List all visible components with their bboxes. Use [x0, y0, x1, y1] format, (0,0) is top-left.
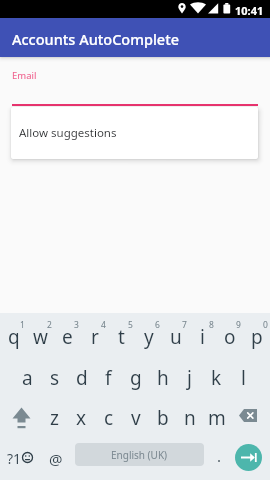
button[interactable]	[230, 396, 270, 438]
button[interactable]: i	[189, 313, 216, 355]
staticText: n	[184, 405, 196, 431]
staticText: u	[170, 324, 182, 350]
staticText: z	[50, 405, 59, 431]
staticText: r	[91, 324, 99, 350]
staticText: x	[76, 405, 87, 431]
button[interactable]: x	[68, 397, 95, 439]
staticText: 4	[101, 319, 106, 331]
button[interactable]: y	[135, 313, 162, 355]
staticText: m	[208, 405, 226, 431]
staticText: q	[8, 324, 20, 350]
staticText: l	[241, 365, 246, 391]
button[interactable]: e	[54, 313, 81, 355]
staticText: j	[187, 365, 192, 391]
button[interactable]: g	[122, 355, 149, 397]
button[interactable]: v	[122, 397, 149, 439]
button[interactable]: k	[203, 355, 230, 397]
button[interactable]: t	[108, 313, 135, 355]
button[interactable]: a	[14, 355, 41, 397]
button[interactable]	[235, 444, 262, 471]
staticText: v	[131, 405, 141, 431]
staticText: o	[224, 324, 236, 350]
button[interactable]: s	[41, 355, 68, 397]
staticText: Accounts AutoComplete	[12, 29, 180, 49]
button[interactable]: Allow suggestions	[11, 107, 258, 159]
staticText: Email	[12, 69, 37, 82]
staticText: e	[62, 324, 73, 350]
staticText: @	[49, 449, 63, 469]
button[interactable]: r	[81, 313, 108, 355]
button[interactable]: u	[162, 313, 189, 355]
button[interactable]: @	[42, 438, 69, 480]
staticText: i	[200, 324, 205, 350]
button[interactable]: m	[203, 397, 230, 439]
staticText: 3	[74, 319, 79, 331]
staticText: h	[157, 365, 169, 391]
staticText: 9	[236, 319, 241, 331]
staticText: 1	[20, 319, 25, 331]
button[interactable]: f	[95, 355, 122, 397]
staticText: f	[105, 365, 112, 391]
staticText: s	[50, 365, 60, 391]
staticText: .	[217, 446, 222, 466]
staticText: English (UK)	[111, 448, 168, 462]
staticText: Allow suggestions	[19, 125, 117, 141]
button[interactable]: b	[149, 397, 176, 439]
staticText: b	[157, 405, 169, 431]
button[interactable]: .	[207, 438, 231, 480]
staticText: 10:41	[235, 3, 264, 18]
button[interactable]: n	[176, 397, 203, 439]
staticText: 6	[155, 319, 160, 331]
button[interactable]: z	[41, 397, 68, 439]
button[interactable]: w	[27, 313, 54, 355]
staticText: a	[22, 365, 33, 391]
staticText: ?1	[7, 449, 22, 468]
button[interactable]: j	[176, 355, 203, 397]
staticText: y	[144, 324, 154, 350]
staticText: d	[76, 365, 88, 391]
button[interactable]: ?1	[0, 438, 40, 480]
button[interactable]: c	[95, 397, 122, 439]
button[interactable]: d	[68, 355, 95, 397]
button[interactable]: English (UK)	[75, 443, 204, 466]
staticText: 5	[128, 319, 133, 331]
staticText: t	[118, 324, 125, 350]
button[interactable]: o	[216, 313, 243, 355]
button[interactable]: p	[243, 313, 270, 355]
staticText: 2	[47, 319, 52, 331]
button[interactable]	[0, 396, 40, 438]
button[interactable]: h	[149, 355, 176, 397]
staticText: g	[130, 365, 142, 391]
staticText: w	[33, 324, 48, 350]
button[interactable]: q	[0, 313, 27, 355]
staticText: 7	[182, 319, 187, 331]
staticText: c	[104, 405, 114, 431]
staticText: p	[251, 324, 263, 350]
staticText: k	[211, 365, 222, 391]
staticText: 8	[209, 319, 214, 331]
button[interactable]: l	[230, 355, 257, 397]
staticText: 0	[263, 319, 268, 331]
